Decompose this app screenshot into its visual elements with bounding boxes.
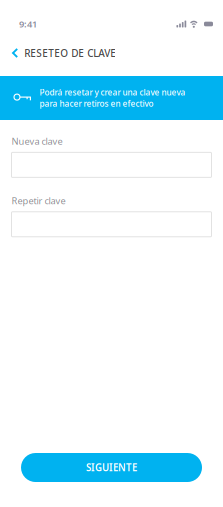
staticText: SIGUIENTE [86,461,137,474]
staticText: RESETEO DE CLAVE [24,46,116,60]
staticText: 9:41 [19,18,37,30]
staticText: Podrá resetar y crear una clave nueva [39,87,185,98]
staticText: para hacer retiros en efectivo [39,98,153,109]
staticText: Nueva clave [11,135,62,147]
button[interactable]: RESETEO DE CLAVE [0,40,124,66]
button[interactable]: SIGUIENTE [21,453,202,482]
staticText: Repetir clave [11,194,65,207]
